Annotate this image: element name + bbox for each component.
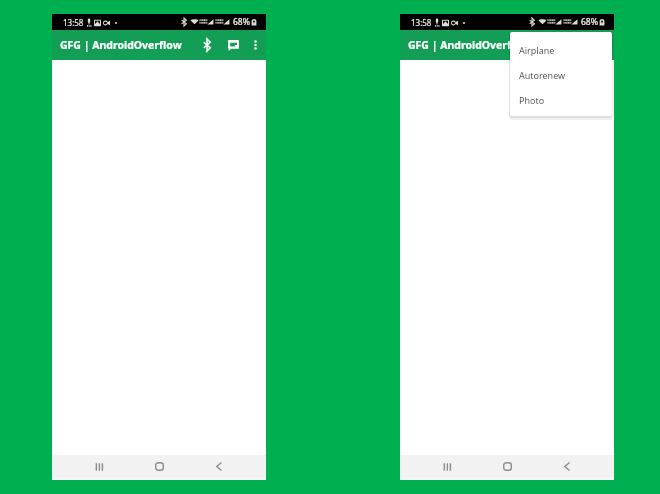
staticText: Airplane (519, 44, 555, 56)
staticText: 13:58 (63, 17, 84, 28)
staticText: Autorenew (519, 69, 566, 81)
staticText: Photo (519, 94, 545, 106)
button[interactable]: Photo (510, 87, 612, 112)
button[interactable]: Bluetooth (195, 33, 219, 57)
button[interactable]: More options (591, 33, 615, 57)
button[interactable]: Home (495, 455, 519, 478)
button[interactable]: Home (147, 455, 171, 478)
staticText: 68% (581, 16, 598, 28)
button[interactable]: Messages (221, 33, 245, 57)
button[interactable]: Airplane (510, 37, 612, 62)
staticText: GFG | AndroidOverflow (60, 38, 182, 52)
button[interactable]: Bluetooth (543, 33, 567, 57)
button[interactable]: Recent apps (435, 455, 459, 478)
staticText: 13:58 (411, 17, 432, 28)
button[interactable]: Back (207, 455, 231, 478)
staticText: GFG | AndroidOverflow (408, 38, 530, 52)
button[interactable]: Recent apps (87, 455, 111, 478)
button[interactable]: More options (243, 33, 267, 57)
staticText: 68% (233, 16, 250, 28)
button[interactable]: Autorenew (510, 62, 612, 87)
button[interactable]: Back (555, 455, 579, 478)
